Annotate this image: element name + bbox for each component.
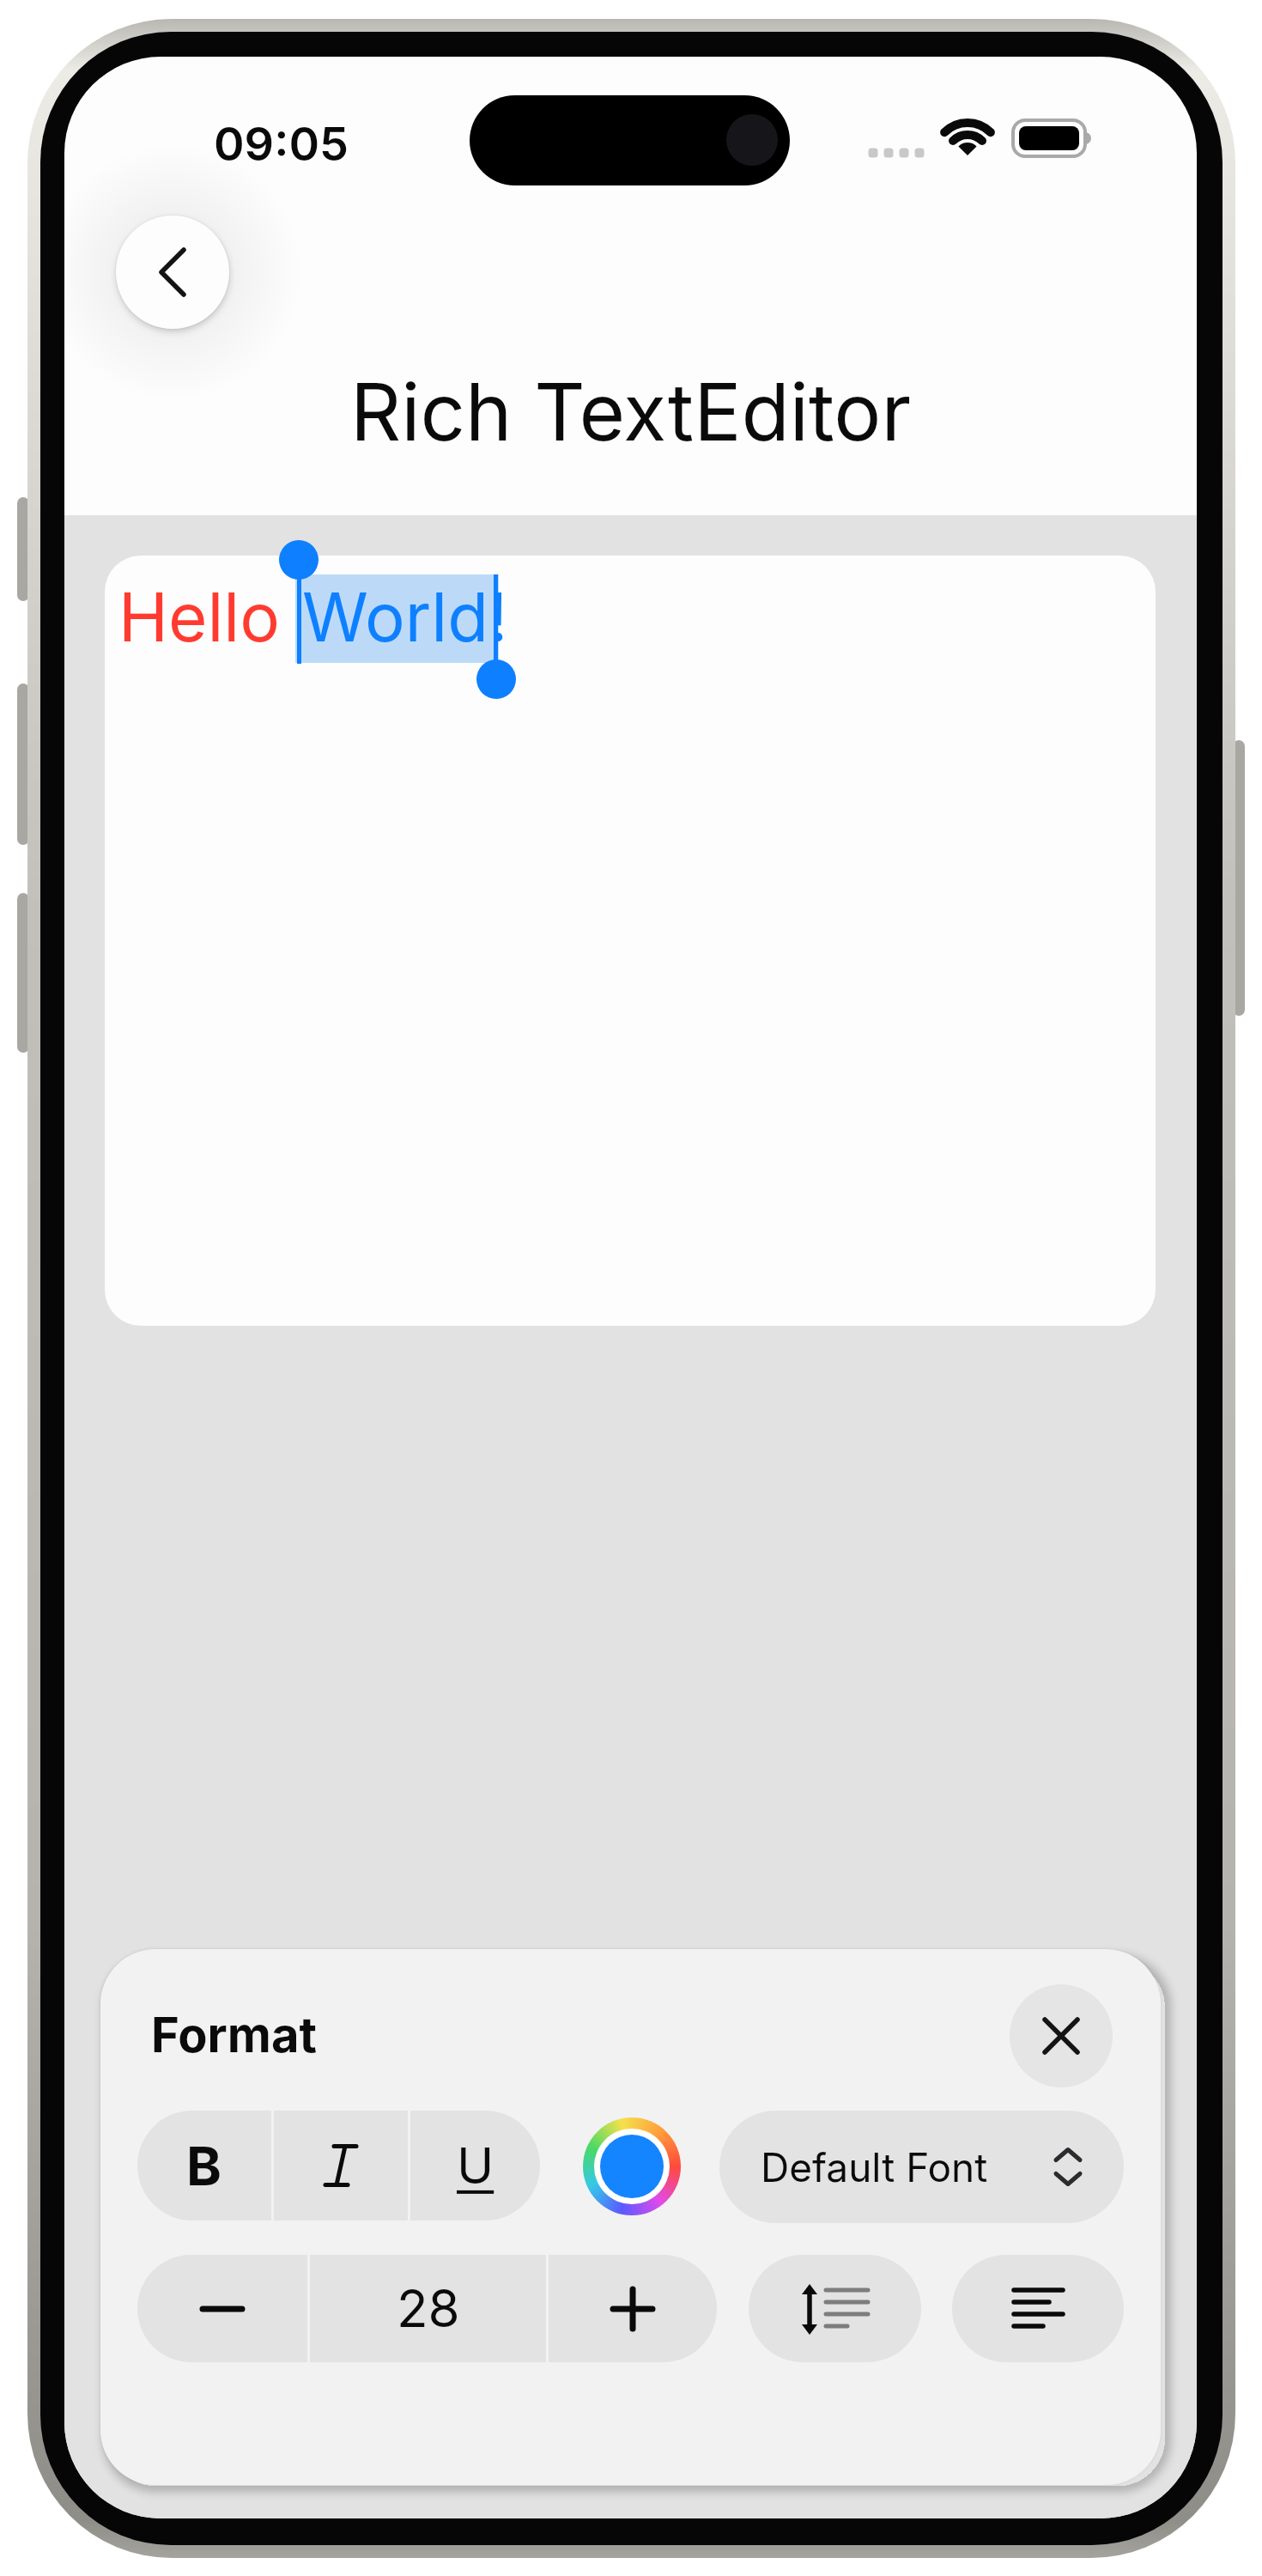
button[interactable]: B <box>137 2111 271 2221</box>
button[interactable] <box>1010 1984 1113 2087</box>
staticText: 28 <box>397 2277 460 2340</box>
staticText: B <box>186 2134 222 2198</box>
button[interactable] <box>137 2255 307 2362</box>
staticText: 09:05 <box>214 116 349 167</box>
button[interactable]: 28 <box>310 2255 546 2362</box>
button[interactable] <box>274 2111 408 2221</box>
button[interactable] <box>116 216 229 329</box>
staticText: Hello <box>118 576 280 657</box>
button[interactable] <box>549 2255 717 2362</box>
staticText: Default Font <box>761 2143 988 2191</box>
button[interactable] <box>583 2117 681 2215</box>
button[interactable]: Default Font <box>719 2111 1124 2223</box>
button[interactable] <box>749 2255 921 2362</box>
staticText: Format <box>151 2006 317 2064</box>
button[interactable] <box>952 2255 1124 2362</box>
staticText: U <box>457 2136 494 2196</box>
button[interactable]: U <box>410 2111 540 2221</box>
staticText: World! <box>302 576 508 657</box>
staticText: Rich TextEditor <box>350 364 912 459</box>
